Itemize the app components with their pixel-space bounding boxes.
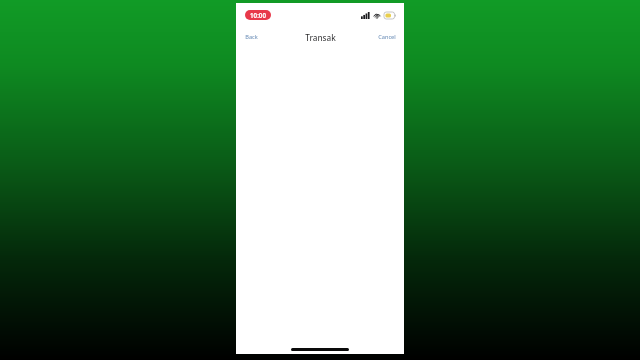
staticText: 10:00 [250,11,266,19]
button[interactable]: Cancel [372,30,404,44]
staticText: Transak [305,32,336,43]
staticText: Cancel [378,33,396,41]
button[interactable]: Back [236,30,264,44]
staticText: Back [245,33,258,41]
